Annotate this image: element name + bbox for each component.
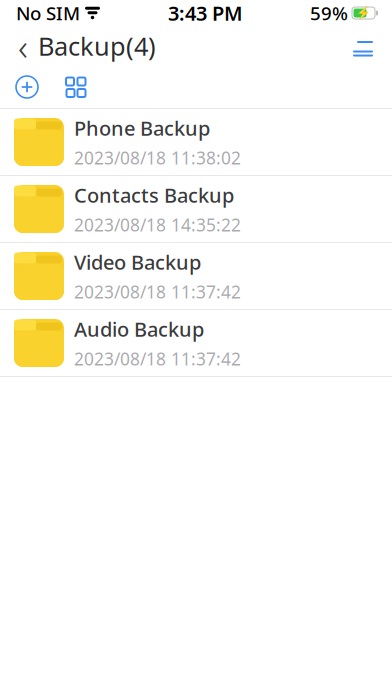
button[interactable]: Phone Backup [0,109,392,176]
button[interactable]: Audio Backup [0,310,392,377]
staticText: Video Backup [74,249,201,275]
staticText: 59% [310,1,348,25]
button[interactable]: Edit [352,34,392,58]
staticText: Contacts Backup [74,182,234,208]
staticText: 2023/08/18 11:37:42 [74,347,241,370]
button[interactable]: Contacts Backup [0,176,392,243]
staticText: 2023/08/18 11:38:02 [74,146,241,169]
staticText: 2023/08/18 11:37:42 [74,280,241,303]
staticText: ⚡ [356,6,371,20]
staticText: Audio Backup [74,316,204,342]
button[interactable]: Add backup [0,68,52,106]
staticText: 3:43 PM [168,0,243,26]
staticText: ‹ [18,21,28,71]
staticText: No SIM [16,1,80,25]
button[interactable]: Change view layout [52,69,100,105]
staticText: Phone Backup [74,115,210,141]
button[interactable]: Video Backup [0,243,392,310]
button[interactable]: ‹ [0,21,156,71]
staticText: 2023/08/18 14:35:22 [74,213,241,236]
staticText: Backup(4) [38,29,156,63]
